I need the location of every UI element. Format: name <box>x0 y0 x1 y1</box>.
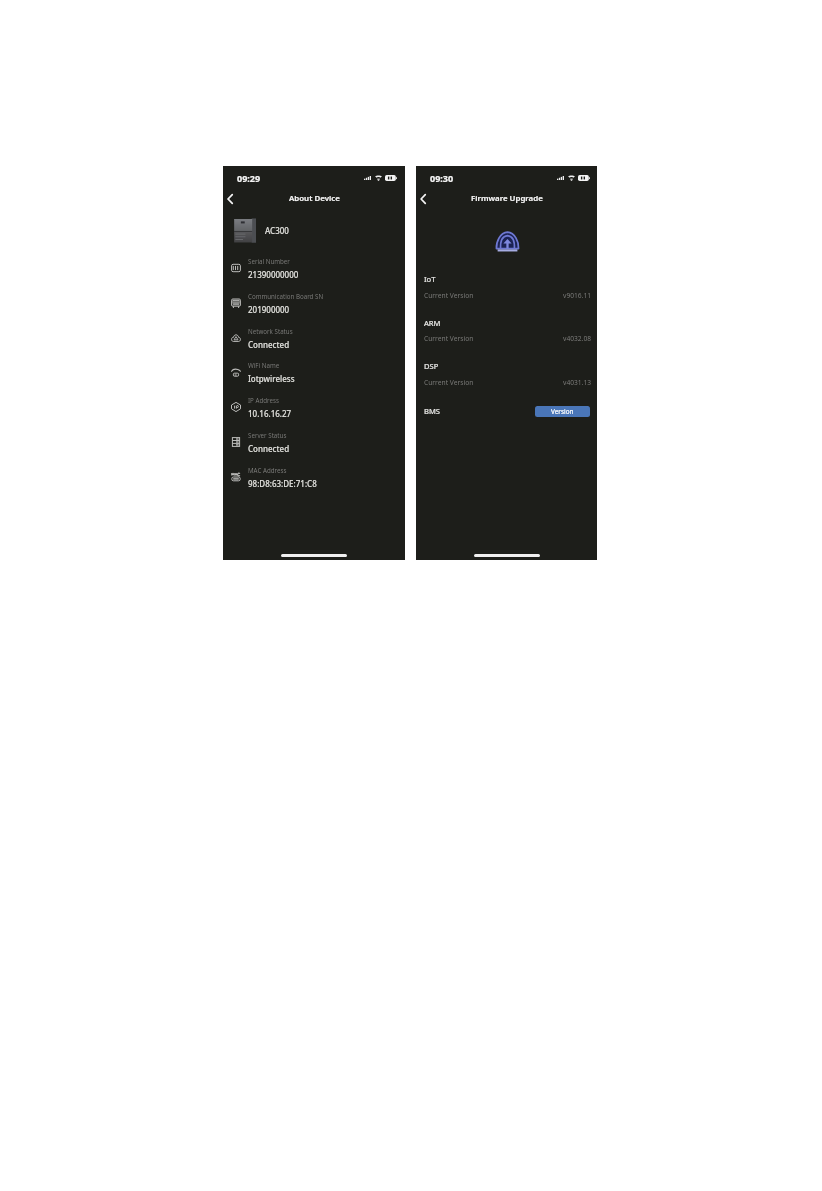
staticText: MAC Address <box>248 466 287 474</box>
staticText: Iotpwireless <box>248 373 295 384</box>
staticText: About Device <box>289 193 340 204</box>
staticText: BMS <box>424 406 440 416</box>
staticText: Connected <box>248 443 290 454</box>
button[interactable]: Version <box>535 406 590 417</box>
staticText: IoT <box>424 274 436 284</box>
button[interactable]: Network Status <box>223 324 405 351</box>
button[interactable]: WiFi Name <box>223 358 405 385</box>
staticText: 21390000000 <box>248 269 299 280</box>
staticText: 201900000 <box>248 304 290 315</box>
button[interactable]: Back <box>221 190 239 208</box>
staticText: Current Version <box>424 291 474 300</box>
staticText: Network Status <box>248 327 293 335</box>
button[interactable]: MAC Address <box>223 463 405 490</box>
staticText: AC300 <box>265 225 289 236</box>
staticText: Connected <box>248 339 290 350</box>
staticText: 10.16.16.27 <box>248 408 292 419</box>
staticText: v9016.11 <box>563 291 592 300</box>
staticText: Communication Board SN <box>248 292 324 300</box>
staticText: Server Status <box>248 431 287 439</box>
staticText: Current Version <box>424 334 474 343</box>
button[interactable]: Back <box>414 190 432 208</box>
staticText: Version <box>551 407 574 416</box>
staticText: v4032.08 <box>563 334 592 343</box>
button[interactable]: Server Status <box>223 428 405 455</box>
staticText: ARM <box>424 318 441 328</box>
staticText: v4031.13 <box>563 378 592 387</box>
staticText: Current Version <box>424 378 474 387</box>
button[interactable]: IP Address <box>223 393 405 420</box>
staticText: Serial Number <box>248 257 290 265</box>
staticText: DSP <box>424 361 439 371</box>
staticText: 09:30 <box>430 172 454 184</box>
staticText: 09:29 <box>237 172 261 184</box>
button[interactable]: AC300 <box>223 212 405 246</box>
staticText: 98:D8:63:DE:71:C8 <box>248 478 317 489</box>
staticText: Firmware Upgrade <box>471 193 543 204</box>
staticText: IP Address <box>248 396 279 404</box>
button[interactable]: Communication Board SN <box>223 289 405 316</box>
staticText: WiFi Name <box>248 361 280 369</box>
button[interactable]: Serial Number <box>223 254 405 281</box>
